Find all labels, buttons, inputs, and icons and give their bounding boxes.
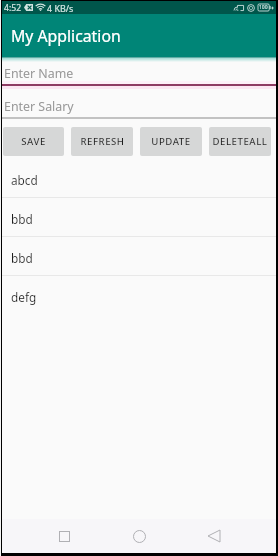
button[interactable]: Recent apps [51,523,77,549]
staticText: 4:52 [4,2,22,14]
staticText: Enter Name [4,65,74,81]
button[interactable]: UPDATE [140,127,202,156]
staticText: DELETEALL [212,135,268,148]
staticText: bbd [11,211,33,227]
staticText: 4 KB/s [47,2,74,14]
button[interactable]: bbd [2,237,276,275]
button[interactable]: DELETEALL [209,127,271,156]
staticText: Enter Salary [4,98,74,115]
staticText: My Application [11,25,121,47]
button[interactable]: Back [201,523,227,549]
staticText: abcd [11,172,38,188]
button[interactable]: REFRESH [71,127,133,156]
button[interactable]: abcd [2,159,276,197]
staticText: bbd [11,250,33,266]
staticText: defg [11,289,37,305]
button[interactable]: Home [126,523,152,549]
staticText: SAVE [21,135,46,148]
staticText: REFRESH [80,135,125,148]
staticText: UPDATE [151,135,191,148]
button[interactable]: SAVE [3,127,64,156]
button[interactable]: bbd [2,198,276,236]
button[interactable]: defg [2,276,276,314]
staticText: 100 [259,4,268,11]
